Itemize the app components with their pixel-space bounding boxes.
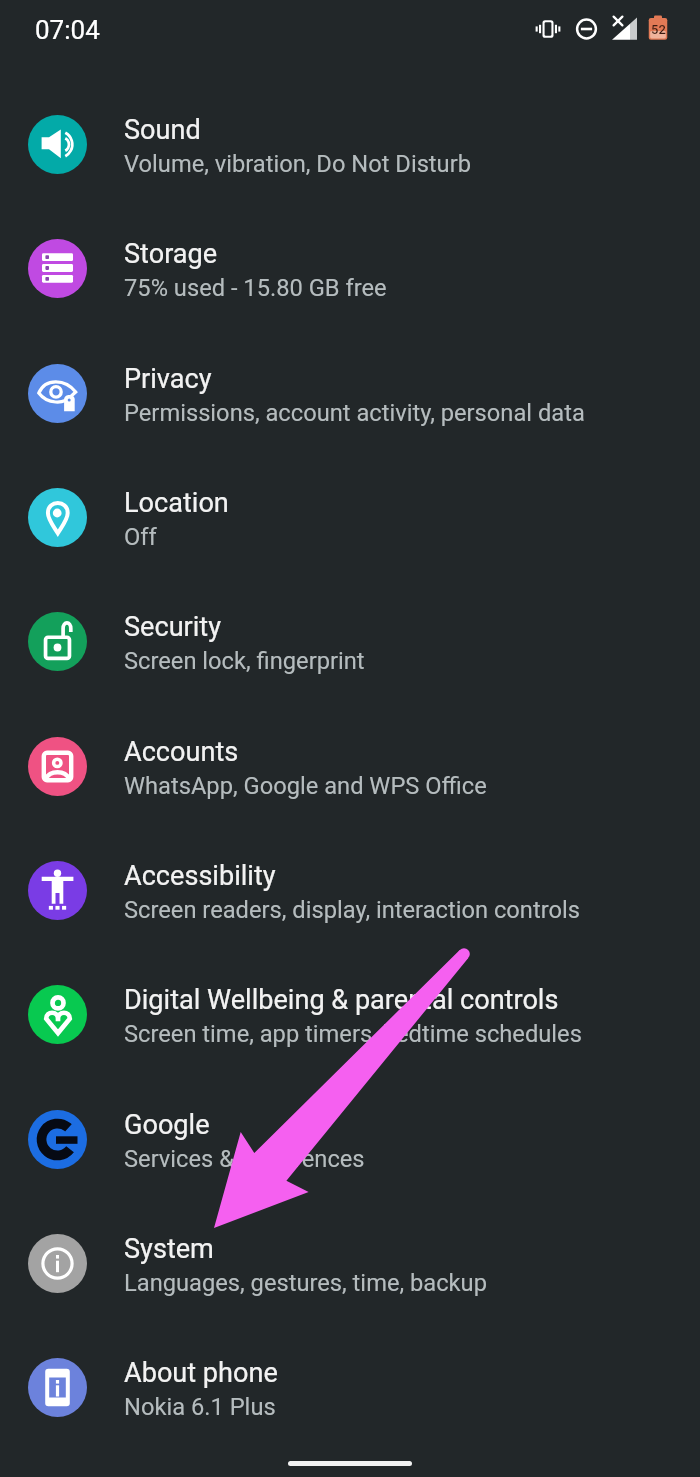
button[interactable]: Sound <box>0 82 700 206</box>
staticText: About phone <box>124 1357 278 1389</box>
button[interactable]: System <box>0 1201 700 1325</box>
staticText: WhatsApp, Google and WPS Office <box>124 772 487 800</box>
staticText: Sound <box>124 114 201 146</box>
button[interactable]: Google <box>0 1077 700 1201</box>
staticText: 75% used - 15.80 GB free <box>124 274 387 302</box>
button[interactable]: Digital Wellbeing & parental controls <box>0 952 700 1076</box>
staticText: Permissions, account activity, personal … <box>124 399 585 427</box>
staticText: System <box>124 1233 214 1265</box>
button[interactable]: About phone <box>0 1325 700 1449</box>
staticText: Security <box>124 611 222 643</box>
button[interactable]: Accounts <box>0 704 700 828</box>
staticText: Privacy <box>124 363 212 395</box>
staticText: Nokia 6.1 Plus <box>124 1393 276 1421</box>
staticText: 07:04 <box>35 15 100 45</box>
staticText: Screen readers, display, interaction con… <box>124 896 580 924</box>
button[interactable]: Security <box>0 579 700 703</box>
staticText: Location <box>124 487 229 519</box>
staticText: Screen lock, fingerprint <box>124 647 365 675</box>
staticText: Volume, vibration, Do Not Disturb <box>124 150 471 178</box>
staticText: Services & preferences <box>124 1145 365 1173</box>
staticText: Languages, gestures, time, backup <box>124 1269 487 1297</box>
staticText: Screen time, app timers, bedtime schedul… <box>124 1020 582 1048</box>
button[interactable]: Location <box>0 455 700 579</box>
staticText: Google <box>124 1109 210 1141</box>
button[interactable]: Storage <box>0 206 700 330</box>
staticText: Off <box>124 523 157 551</box>
staticText: Storage <box>124 238 218 270</box>
staticText: Accessibility <box>124 860 276 892</box>
button[interactable]: Accessibility <box>0 828 700 952</box>
staticText: Digital Wellbeing & parental controls <box>124 984 559 1016</box>
staticText: Accounts <box>124 736 239 768</box>
button[interactable]: Privacy <box>0 331 700 455</box>
staticText: 52 <box>651 22 666 37</box>
